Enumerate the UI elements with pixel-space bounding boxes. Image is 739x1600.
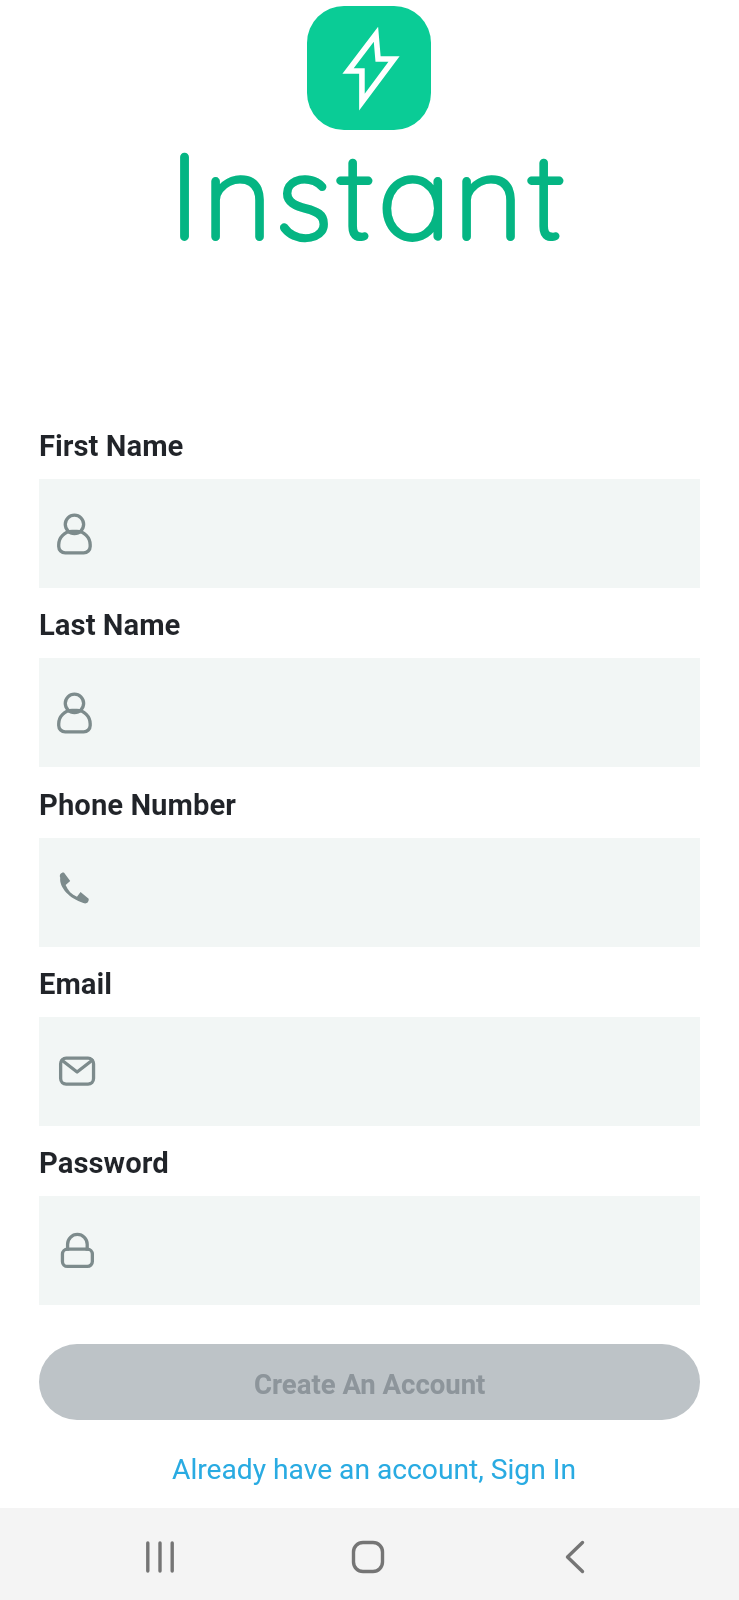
- staticText: Create An Account: [254, 1368, 486, 1400]
- button[interactable]: [39, 658, 700, 767]
- button[interactable]: Recent apps: [136, 1508, 184, 1600]
- staticText: Instant: [170, 119, 570, 269]
- button[interactable]: [39, 479, 700, 588]
- staticText: Last Name: [39, 608, 181, 642]
- button[interactable]: Home: [344, 1508, 392, 1600]
- button[interactable]: [39, 1017, 700, 1126]
- button[interactable]: Already have an account, Sign In: [4, 1447, 739, 1491]
- staticText: Already have an account, Sign In: [172, 1453, 576, 1486]
- staticText: Password: [39, 1146, 169, 1180]
- button[interactable]: [39, 1196, 700, 1305]
- staticText: First Name: [39, 429, 184, 463]
- button[interactable]: Create An Account: [39, 1344, 700, 1420]
- staticText: Phone Number: [39, 788, 236, 822]
- staticText: Email: [39, 967, 113, 1001]
- button[interactable]: Back: [551, 1508, 599, 1600]
- button[interactable]: [39, 838, 700, 947]
- other: Instant logo: [307, 6, 431, 130]
